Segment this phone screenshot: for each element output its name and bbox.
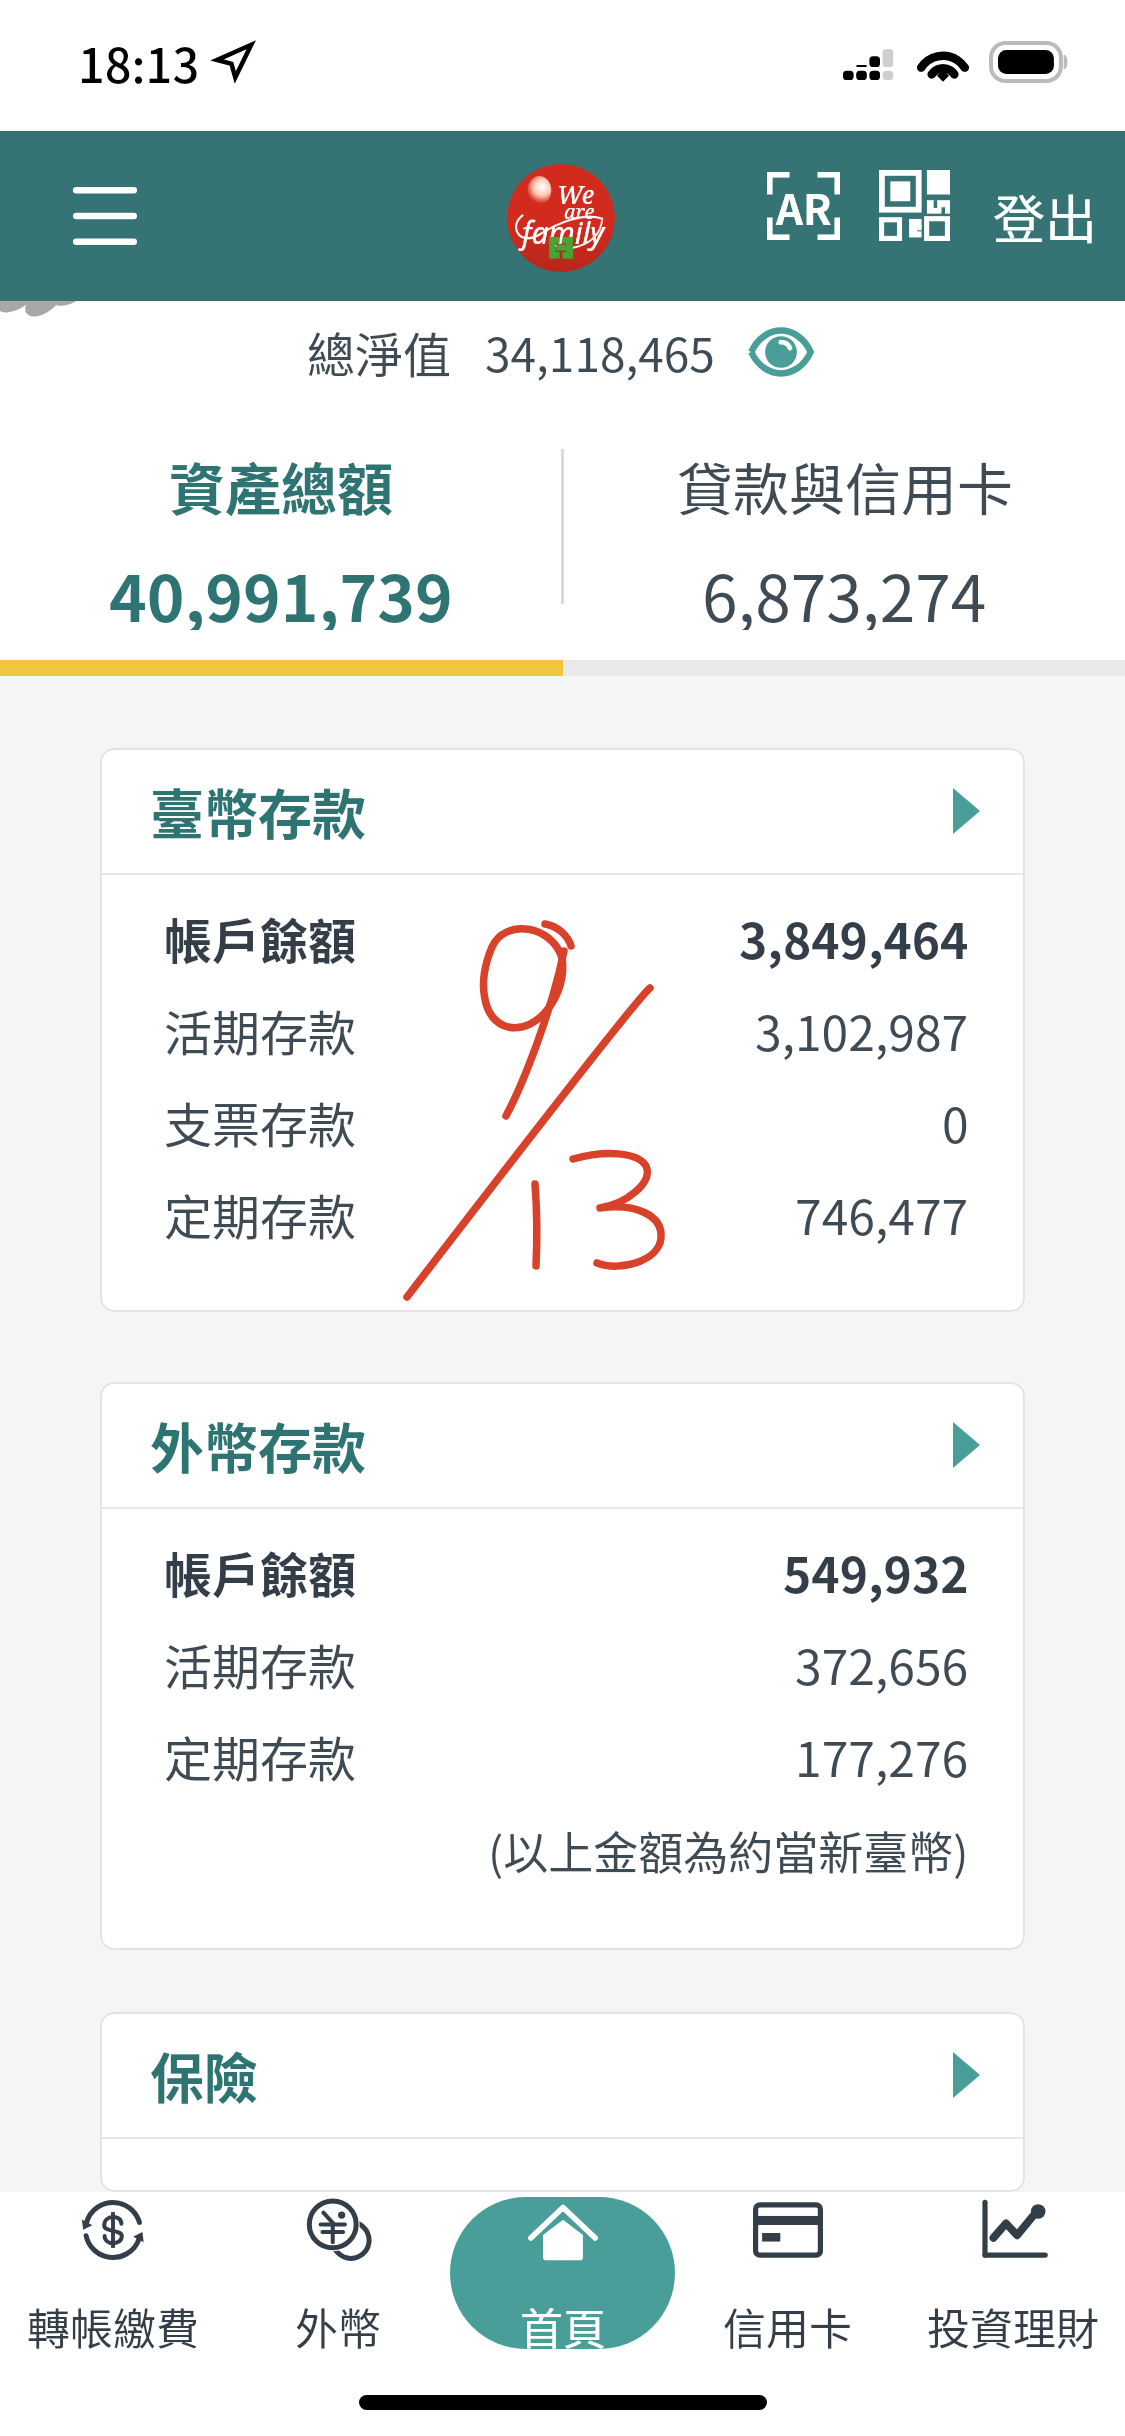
staticText: 外幣存款 <box>150 1406 366 1484</box>
staticText: 3,102,987 <box>755 995 969 1065</box>
staticText: 549,932 <box>783 1537 969 1607</box>
staticText: We <box>557 177 594 211</box>
staticText: (以上金額為約當新臺幣) <box>488 1818 969 1883</box>
staticText: 372,656 <box>795 1629 969 1699</box>
button[interactable]: Toggle balance visibility <box>744 325 818 379</box>
staticText: 保險 <box>150 2036 258 2114</box>
staticText: 轉帳繳費 <box>27 2295 199 2349</box>
staticText: 定期存款 <box>164 1721 357 1791</box>
button[interactable]: 首頁 <box>450 2197 675 2349</box>
staticText: 信用卡 <box>723 2295 852 2349</box>
button[interactable]: Scan QR code <box>861 161 971 271</box>
button[interactable]: 貸款與信用卡 <box>564 445 1125 630</box>
staticText: 投資理財 <box>927 2295 1099 2349</box>
staticText: 177,276 <box>795 1721 969 1791</box>
staticText: 746,477 <box>795 1179 969 1249</box>
staticText: 活期存款 <box>164 1629 357 1699</box>
staticText: family <box>522 212 605 253</box>
staticText: 40,991,739 <box>109 548 453 630</box>
staticText: 34,118,465 <box>485 319 715 386</box>
button[interactable]: 資產總額 <box>0 445 561 630</box>
button[interactable]: AR view <box>741 156 861 276</box>
staticText: 定期存款 <box>164 1179 357 1249</box>
staticText: 帳戶餘額 <box>164 903 357 973</box>
button[interactable]: 外幣存款 <box>100 1382 1025 1507</box>
button[interactable]: 登出 <box>983 159 1108 274</box>
button[interactable]: 保險 <box>100 2012 1025 2137</box>
staticText: are <box>564 198 595 225</box>
staticText: 18:13 <box>78 28 200 96</box>
staticText: 帳戶餘額 <box>164 1537 357 1607</box>
staticText: 支票存款 <box>164 1087 357 1157</box>
staticText: AR <box>776 176 832 237</box>
button[interactable]: 投資理財 <box>900 2197 1125 2349</box>
button[interactable]: 轉帳繳費 <box>0 2197 225 2349</box>
staticText: 0 <box>942 1087 969 1157</box>
button[interactable]: 信用卡 <box>675 2197 900 2349</box>
staticText: 貸款與信用卡 <box>677 445 1013 526</box>
staticText: 臺幣存款 <box>150 772 366 850</box>
staticText: 3,849,464 <box>739 903 969 973</box>
staticText: 6,873,274 <box>702 548 987 630</box>
staticText: 首頁 <box>520 2295 606 2349</box>
staticText: 外幣 <box>295 2295 381 2349</box>
staticText: 登出 <box>993 179 1098 254</box>
staticText: 總淨值 <box>307 317 452 387</box>
button[interactable]: Menu <box>40 151 170 281</box>
button[interactable]: 臺幣存款 <box>100 748 1025 873</box>
staticText: 活期存款 <box>164 995 357 1065</box>
button[interactable]: 外幣 <box>225 2197 450 2349</box>
staticText: 資產總額 <box>169 445 393 526</box>
